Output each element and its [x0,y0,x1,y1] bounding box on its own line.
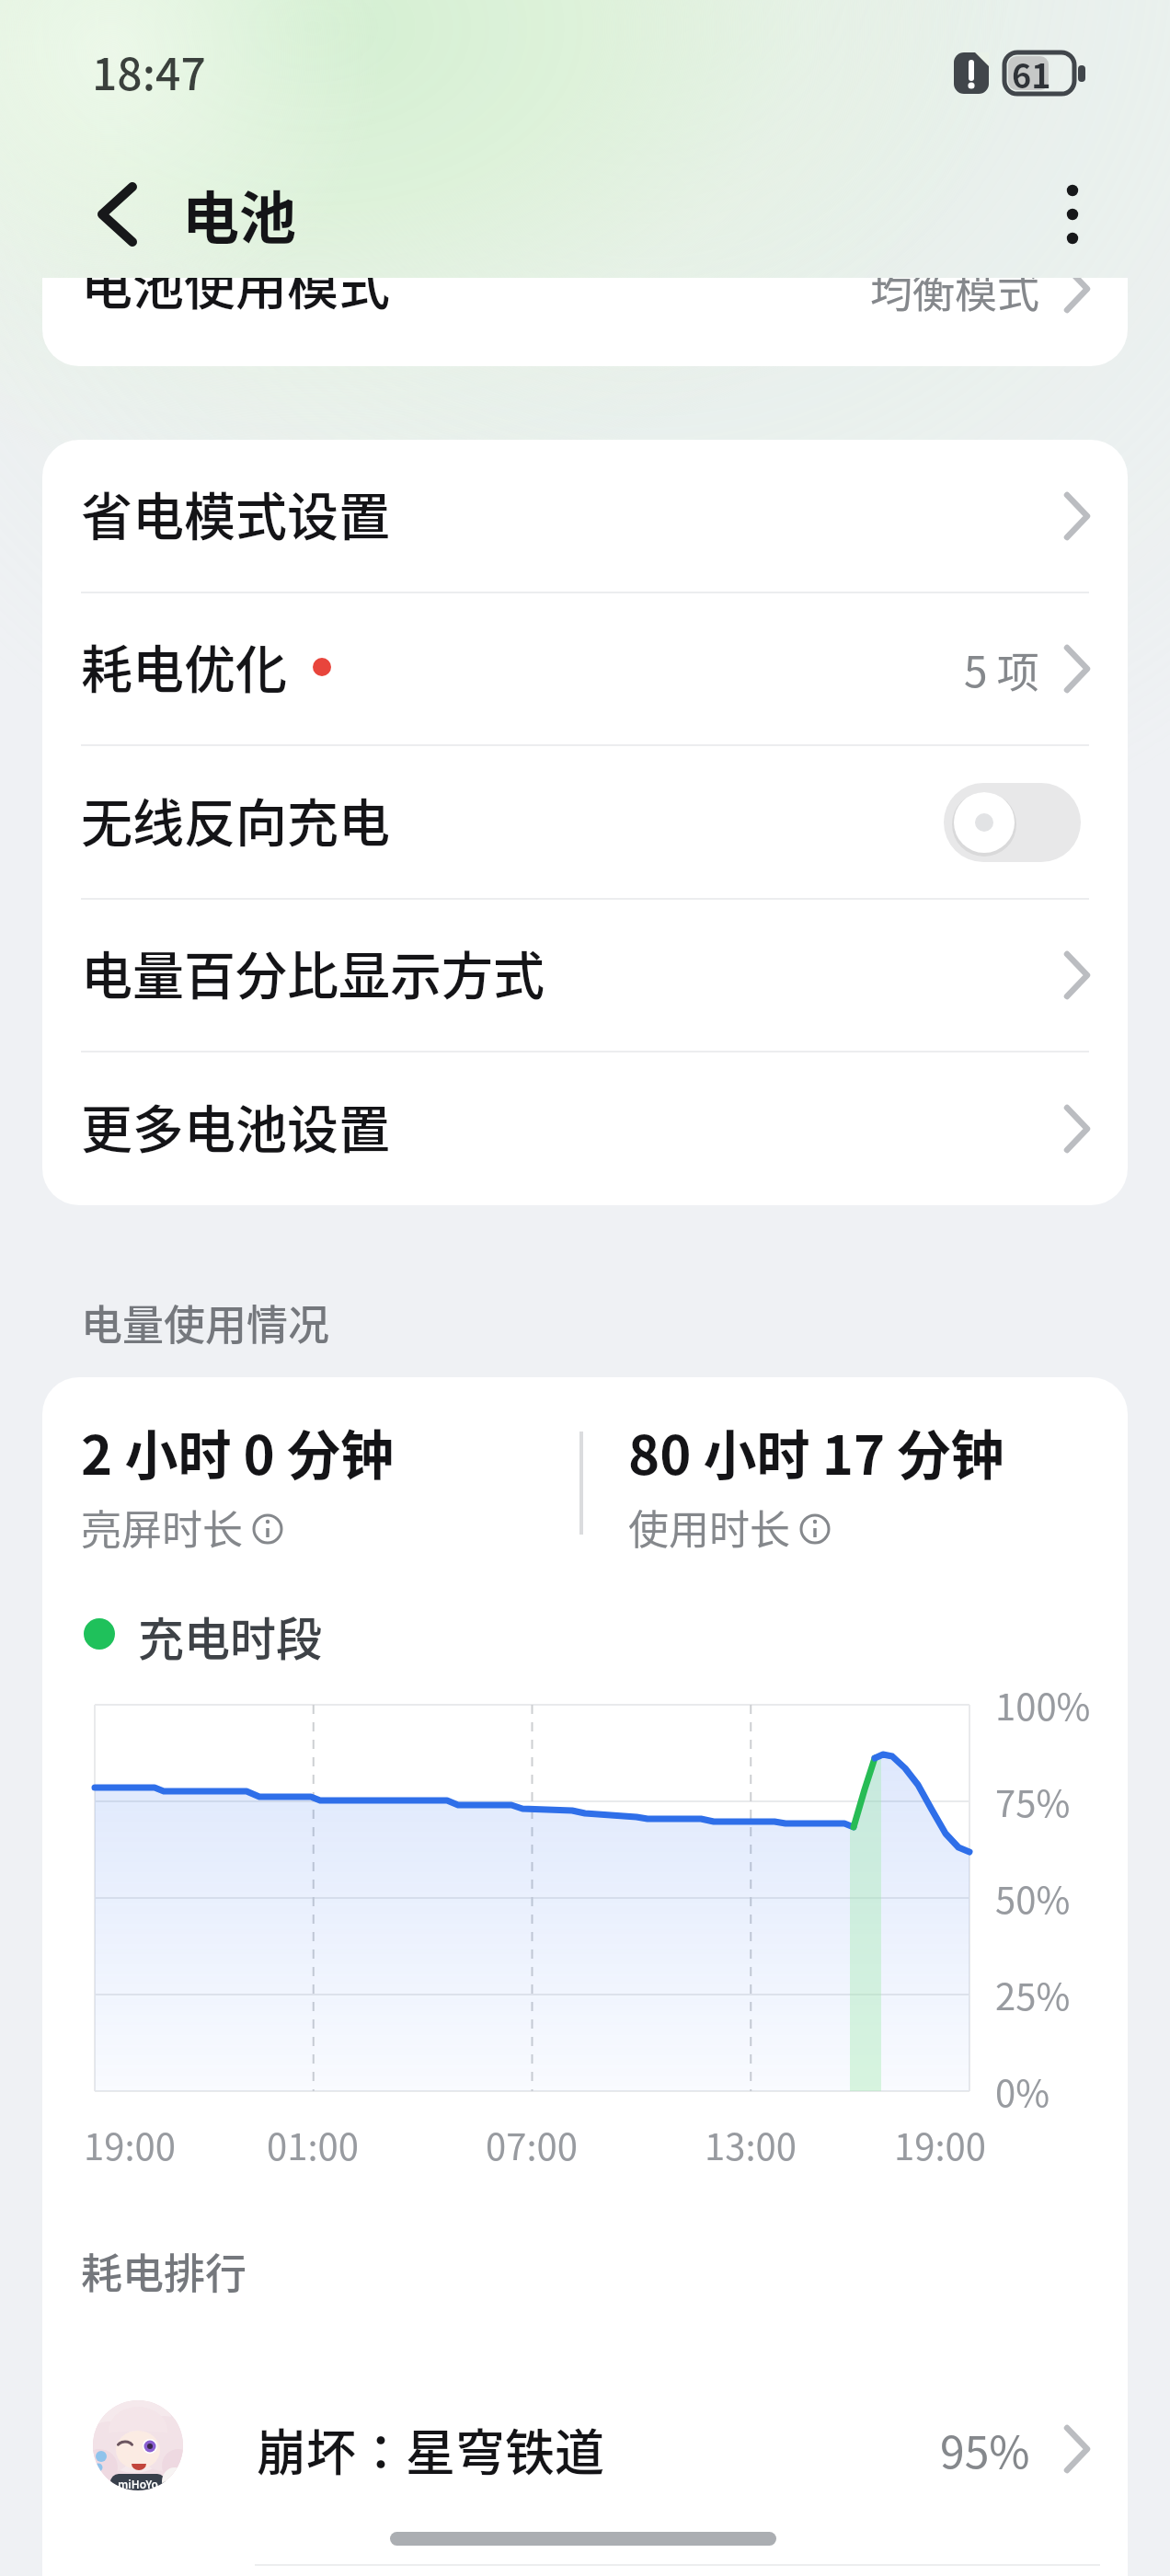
staticText: 充电时段 [138,1603,322,1669]
staticText: 25% [995,1968,1071,2021]
staticText: 61 [1012,50,1051,98]
button[interactable] [42,2337,1128,2576]
staticText: 5 项 [964,638,1039,700]
button[interactable] [77,175,160,258]
staticText: 电池 [182,173,297,256]
staticText: 崩坏：星穹铁道 [257,2413,604,2485]
button[interactable] [42,1052,1128,1204]
staticText: 无线反向充电 [81,782,390,857]
staticText: 电池使用模式 [81,278,390,319]
staticText: 50% [995,1871,1071,1925]
staticText: 2 小时 0 分钟 [81,1413,394,1490]
staticText: 耗电优化 [81,628,287,703]
staticText: 0% [995,2064,1050,2118]
staticText: 电量百分比显示方式 [81,935,545,1009]
staticText: 19:00 [84,2118,176,2171]
button[interactable]: 电池使用模式 [42,278,1128,366]
staticText: miHoYo [118,2476,158,2491]
button[interactable] [929,773,1095,872]
staticText: 80 小时 17 分钟 [628,1413,1004,1490]
staticText: 耗电排行 [81,2241,247,2301]
staticText: 均衡模式 [870,278,1039,320]
staticText: 亮屏时长 [81,1498,243,1557]
staticText: 01:00 [267,2118,359,2171]
staticText: 13:00 [705,2118,797,2171]
button[interactable] [42,899,1128,1052]
button[interactable] [42,440,1128,592]
staticText: 19:00 [894,2118,986,2171]
staticText: 使用时长 [628,1498,790,1557]
button[interactable] [42,592,1128,745]
staticText: 95% [940,2417,1030,2481]
staticText: 省电模式设置 [81,476,390,550]
staticText: 100% [995,1678,1091,1731]
button[interactable] [1030,175,1113,258]
button[interactable] [42,745,1128,898]
staticText: 07:00 [486,2118,578,2171]
staticText: 电量使用情况 [81,1293,330,1352]
staticText: 75% [995,1775,1071,1828]
staticText: 18:47 [92,39,206,103]
staticText: 更多电池设置 [81,1088,390,1163]
